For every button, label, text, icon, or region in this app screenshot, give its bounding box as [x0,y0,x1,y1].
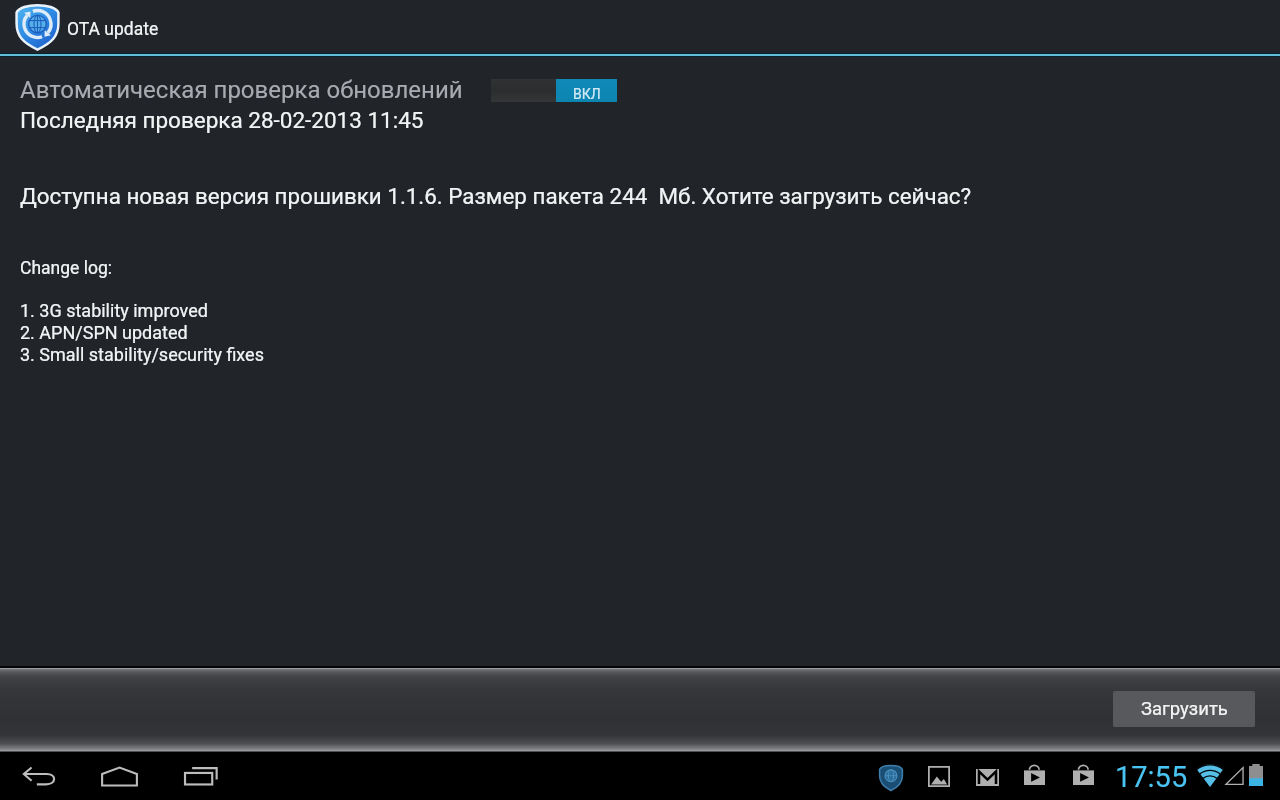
button[interactable]: Recents [168,752,234,800]
staticText: 1. 3G stability improved 2. APN/SPN upda… [20,300,264,365]
staticText: 17:55 [1115,760,1188,794]
button[interactable]: Home [87,752,151,800]
staticText: Change log: [20,258,112,279]
staticText: ВКЛ [573,86,601,102]
button[interactable]: Загрузить [1113,691,1255,727]
staticText: OTA update [67,19,159,40]
staticText: Последняя проверка 28-02-2013 11:45 [20,107,424,133]
staticText: Доступна новая версия прошивки 1.1.6. Ра… [20,183,972,209]
staticText: Автоматическая проверка обновлений [20,76,463,104]
button[interactable]: ВКЛ [491,79,617,102]
staticText: Загрузить [1141,698,1228,720]
button[interactable]: Back [7,752,71,800]
